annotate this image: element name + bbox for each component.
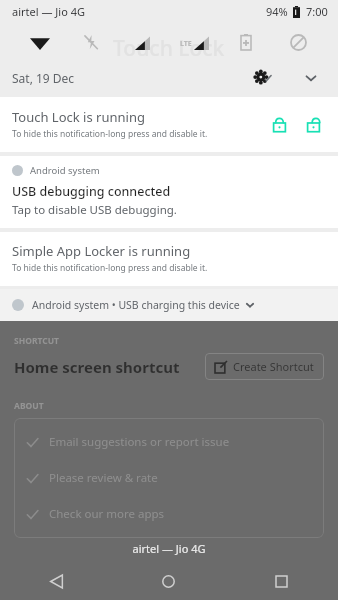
- button[interactable]: Wi-Fi: [14, 22, 65, 62]
- staticText: Please review & rate: [49, 470, 158, 486]
- staticText: USB debugging connected: [12, 183, 171, 200]
- staticText: Simple App Locker is running: [12, 242, 191, 260]
- button[interactable]: Settings: [248, 63, 278, 93]
- staticText: LTE: [180, 39, 192, 49]
- button[interactable]: Create Shortcut: [205, 353, 324, 380]
- staticText: Touch Lock is running: [12, 108, 145, 126]
- other: Mobile signal: [180, 35, 209, 50]
- staticText: Check our more apps: [49, 506, 165, 522]
- button[interactable]: Expand: [296, 63, 326, 93]
- other: Mobile signal: [135, 35, 150, 50]
- staticText: Email suggestions or report issue: [49, 434, 230, 450]
- other: Wi-Fi: [30, 35, 50, 50]
- button[interactable]: Android system • USB charging this devic…: [0, 289, 338, 321]
- button[interactable]: Flashlight: [65, 22, 116, 62]
- staticText: 7:00: [306, 4, 328, 19]
- button[interactable]: Simple App Locker is running: [0, 232, 338, 286]
- button[interactable]: Recents: [225, 562, 338, 600]
- button[interactable]: Mobile signal: [116, 22, 168, 62]
- staticText: airtel — Jio 4G: [14, 541, 324, 556]
- staticText: Android system: [30, 164, 100, 177]
- button[interactable]: Mobile signal: [168, 22, 220, 62]
- other: Battery saver: [241, 34, 251, 50]
- staticText: Sat, 19 Dec: [12, 70, 75, 86]
- staticText: ABOUT: [14, 400, 44, 412]
- staticText: airtel — Jio 4G: [12, 4, 85, 19]
- staticText: Tap to disable USB debugging.: [12, 202, 177, 218]
- button[interactable]: Touch Lock is running: [0, 97, 338, 152]
- button[interactable]: Battery saver: [220, 22, 272, 62]
- staticText: To hide this notification-long press and…: [12, 262, 208, 274]
- staticText: Home screen shortcut: [14, 357, 205, 377]
- button[interactable]: Please review & rate: [14, 460, 324, 496]
- button[interactable]: Unlock: [296, 107, 330, 141]
- staticText: SHORTCUT: [14, 335, 60, 347]
- button[interactable]: Home: [112, 562, 225, 600]
- staticText: To hide this notification-long press and…: [12, 128, 208, 140]
- staticText: Android system • USB charging this devic…: [32, 298, 240, 312]
- staticText: 94%: [266, 4, 288, 19]
- other: Flashlight: [83, 34, 99, 50]
- other: Do not disturb: [290, 34, 307, 51]
- staticText: Touch Lock: [113, 34, 225, 63]
- button[interactable]: Email suggestions or report issue: [14, 424, 324, 460]
- button[interactable]: Check our more apps: [14, 496, 324, 532]
- button[interactable]: Lock: [262, 107, 296, 141]
- staticText: Create Shortcut: [233, 359, 314, 374]
- button[interactable]: Android system: [0, 156, 338, 228]
- button[interactable]: Do not disturb: [272, 22, 324, 62]
- button[interactable]: Back: [0, 562, 112, 600]
